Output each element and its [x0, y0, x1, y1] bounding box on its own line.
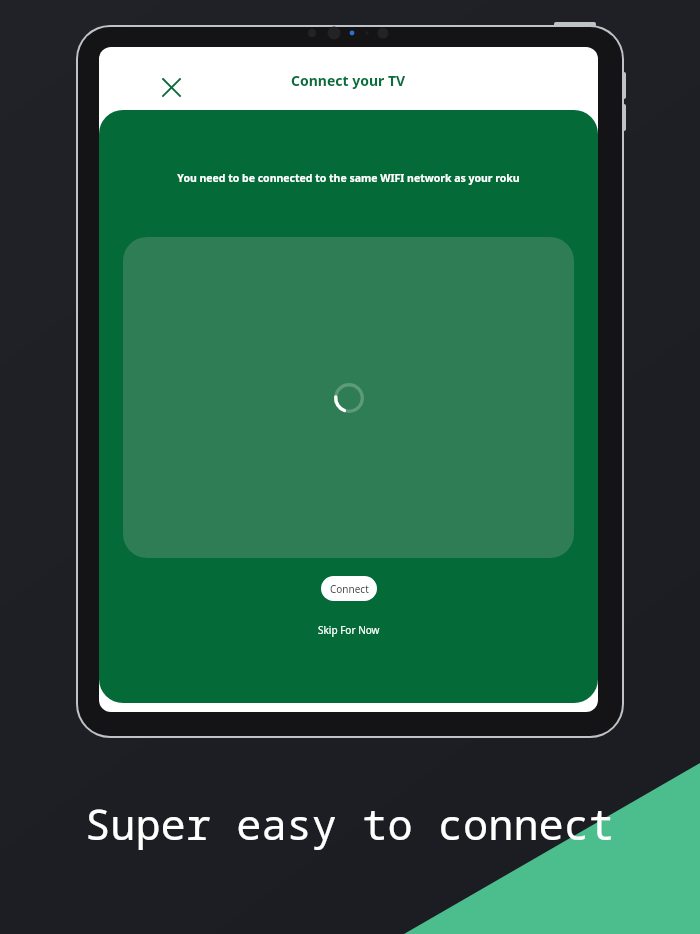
staticText: Super easy to connect — [85, 795, 615, 852]
staticText: Connect your TV — [291, 71, 406, 90]
button[interactable]: Connect — [321, 576, 377, 601]
staticText: Skip For Now — [318, 623, 380, 637]
button[interactable]: Skip For Now — [318, 623, 380, 637]
staticText: Connect — [330, 582, 369, 596]
button[interactable]: Close — [149, 65, 193, 109]
staticText: You need to be connected to the same WIF… — [177, 171, 520, 185]
